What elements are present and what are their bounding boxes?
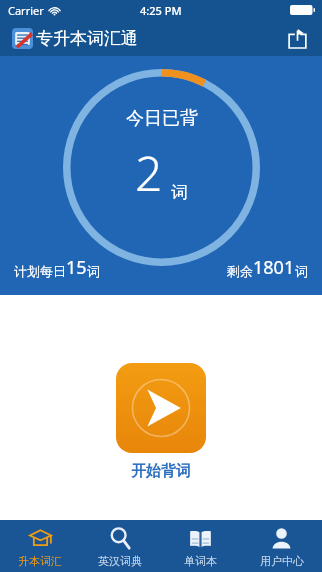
button[interactable]: Share [282,23,312,53]
staticText: 词 [295,263,308,279]
button[interactable]: 用户中心 [241,520,322,572]
staticText: 英汉词典 [98,554,142,568]
button[interactable]: 开始背词 [116,363,206,481]
staticText: 升本词汇 [18,554,62,568]
staticText: 用户中心 [260,554,304,568]
staticText: 词 [87,263,100,279]
staticText: 剩余 [227,263,253,279]
staticText: 2 [135,140,163,205]
staticText: Carrier [8,3,44,18]
staticText: 专升本词汇通 [36,28,138,49]
staticText: 1801 [253,255,295,280]
button[interactable]: 英汉词典 [80,520,160,572]
staticText: 15 [66,255,87,280]
staticText: 词 [171,182,188,203]
staticText: 今日已背 [126,107,198,130]
button[interactable]: 升本词汇 [0,520,80,572]
staticText: 4:25 PM [140,3,182,18]
button[interactable]: 单词本 [160,520,241,572]
staticText: 开始背词 [131,462,191,481]
staticText: 计划每日 [14,263,66,279]
staticText: 单词本 [184,554,217,568]
